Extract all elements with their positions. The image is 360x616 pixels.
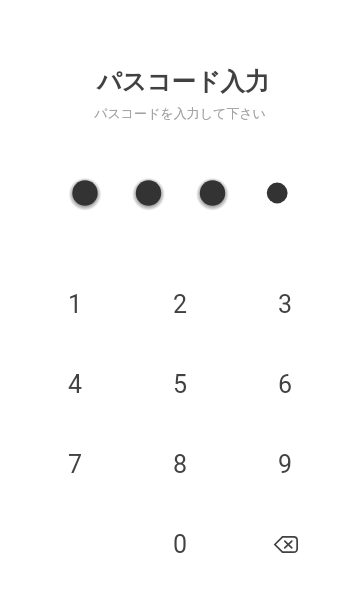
button[interactable]: 4 (23, 344, 128, 424)
staticText: 2 (173, 290, 188, 319)
staticText: 3 (278, 290, 293, 319)
button[interactable]: 5 (128, 344, 233, 424)
button[interactable]: Backspace (233, 504, 338, 584)
staticText: 4 (68, 370, 83, 399)
button[interactable]: 0 (128, 504, 233, 584)
staticText: 7 (68, 450, 83, 479)
staticText: パスコードを入力して下さい (0, 105, 360, 121)
staticText: 5 (173, 370, 188, 399)
other: Backspace (274, 536, 298, 553)
staticText: 9 (278, 450, 293, 479)
button[interactable]: 2 (128, 264, 233, 344)
staticText: 8 (173, 450, 188, 479)
button[interactable]: 1 (23, 264, 128, 344)
button[interactable]: 9 (233, 424, 338, 504)
staticText: 6 (278, 370, 293, 399)
button[interactable]: 6 (233, 344, 338, 424)
staticText: 0 (173, 530, 188, 559)
staticText: 1 (68, 290, 83, 319)
staticText: パスコード入力 (3, 67, 360, 98)
button[interactable]: 3 (233, 264, 338, 344)
button[interactable]: 8 (128, 424, 233, 504)
button[interactable]: 7 (23, 424, 128, 504)
